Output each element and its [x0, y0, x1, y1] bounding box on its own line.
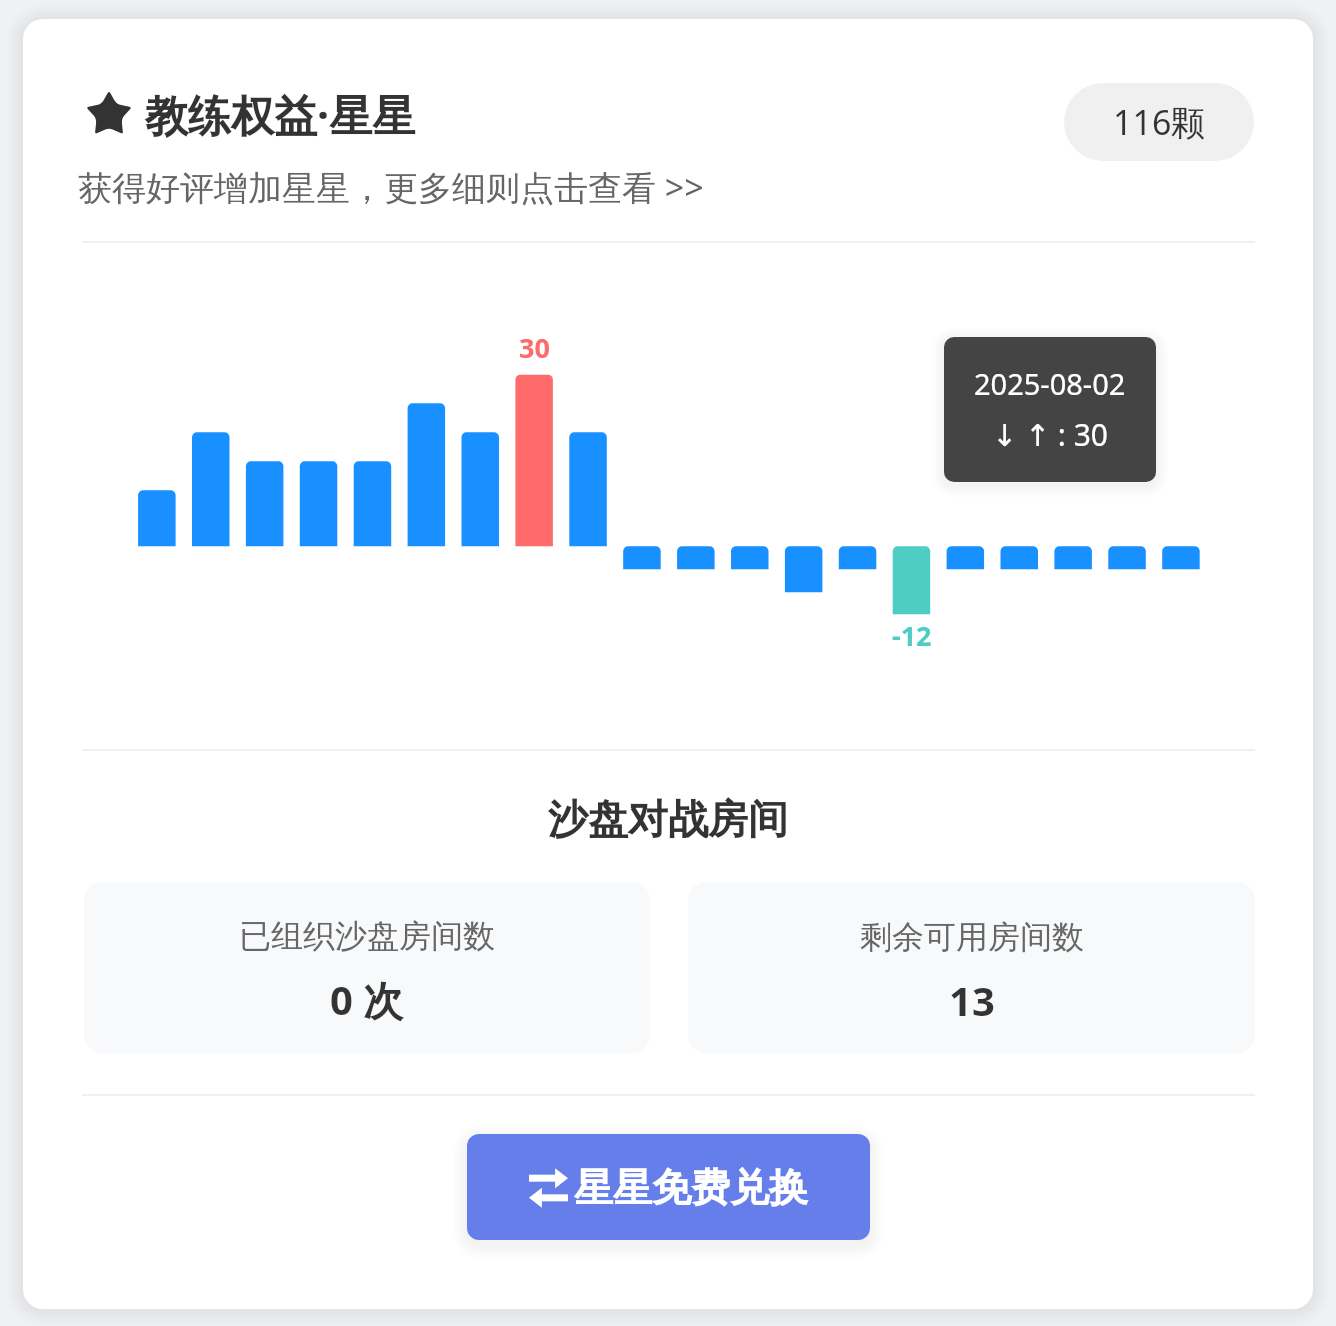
- staticText: 沙盘对战房间: [548, 794, 788, 844]
- staticText: 星星免费兑换: [574, 1163, 808, 1212]
- button[interactable]: Exchange: [467, 1134, 870, 1240]
- staticText: 13: [949, 973, 995, 1027]
- button[interactable]: 获得好评增加星星，更多细则点击查看 >>: [71, 157, 711, 217]
- staticText: 2025-08-02: [974, 364, 1126, 403]
- staticText: 已组织沙盘房间数: [239, 916, 495, 956]
- staticText: 获得好评增加星星，更多细则点击查看 >>: [78, 164, 704, 210]
- staticText: ↓ ↑ : 30: [992, 414, 1109, 455]
- staticText: 教练权益·星星: [145, 85, 416, 144]
- staticText: 剩余可用房间数: [860, 917, 1084, 957]
- button[interactable]: Star: [85, 85, 416, 144]
- button[interactable]: 已组织沙盘房间数: [84, 882, 650, 1053]
- other: Exchange: [529, 1168, 568, 1208]
- button[interactable]: 剩余可用房间数: [688, 882, 1255, 1053]
- other: Star: [85, 91, 133, 138]
- button[interactable]: 116颗: [1064, 83, 1254, 161]
- staticText: 30: [519, 329, 550, 365]
- staticText: -12: [892, 617, 932, 653]
- staticText: 116颗: [1113, 99, 1206, 145]
- staticText: 0 次: [330, 972, 404, 1027]
